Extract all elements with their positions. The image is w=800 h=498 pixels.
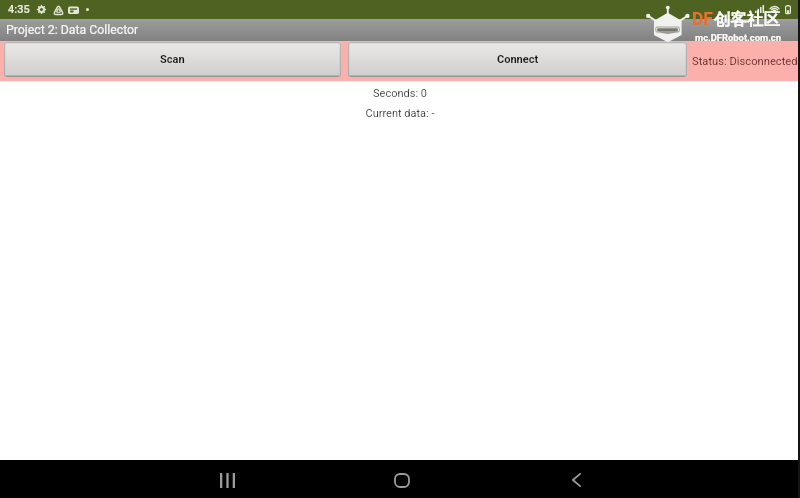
staticText: 4:35 xyxy=(8,3,30,16)
button[interactable]: Home xyxy=(374,468,430,492)
staticText: 创客社区 xyxy=(714,9,780,30)
staticText: Scan xyxy=(160,53,185,66)
button[interactable]: Back xyxy=(548,468,604,492)
button[interactable]: Connect xyxy=(348,42,687,77)
staticText: Connect xyxy=(497,53,539,66)
staticText: Project 2: Data Collector xyxy=(6,23,139,37)
staticText: DF xyxy=(692,9,713,30)
button[interactable]: Recent apps xyxy=(199,468,255,492)
staticText: Current data: - xyxy=(0,107,800,120)
staticText: Status: Disconnected xyxy=(692,55,798,68)
button[interactable]: Scan xyxy=(4,42,341,77)
staticText: Seconds: 0 xyxy=(0,87,800,100)
staticText: mc.DFRobot.com.cn xyxy=(695,32,782,43)
